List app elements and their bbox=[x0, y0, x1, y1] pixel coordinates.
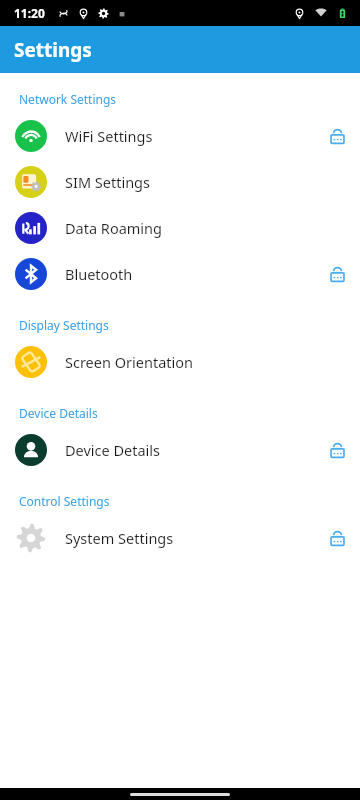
staticText: Data Roaming bbox=[65, 218, 346, 238]
staticText: System Settings bbox=[65, 528, 329, 548]
staticText: Screen Orientation bbox=[65, 352, 346, 372]
other: Locked bbox=[329, 530, 346, 547]
button[interactable]: WiFi Settings bbox=[0, 113, 360, 159]
staticText: Settings bbox=[14, 37, 92, 63]
staticText: Device Details bbox=[19, 405, 98, 421]
staticText: Device Details bbox=[65, 440, 329, 460]
button[interactable]: Screen Orientation bbox=[0, 339, 360, 385]
staticText: SIM Settings bbox=[65, 172, 346, 192]
button[interactable]: Device Details bbox=[0, 427, 360, 473]
staticText: Network Settings bbox=[19, 91, 117, 107]
other: Locked bbox=[329, 266, 346, 283]
staticText: WiFi Settings bbox=[65, 126, 329, 146]
staticText: 11:20 bbox=[14, 5, 45, 21]
button[interactable]: System Settings bbox=[0, 515, 360, 561]
button[interactable]: Data Roaming bbox=[0, 205, 360, 251]
staticText: Control Settings bbox=[19, 493, 110, 509]
button[interactable]: Bluetooth bbox=[0, 251, 360, 297]
other: Locked bbox=[329, 442, 346, 459]
staticText: Bluetooth bbox=[65, 264, 329, 284]
button[interactable]: SIM Settings bbox=[0, 159, 360, 205]
staticText: Display Settings bbox=[19, 317, 109, 333]
other: Locked bbox=[329, 128, 346, 145]
